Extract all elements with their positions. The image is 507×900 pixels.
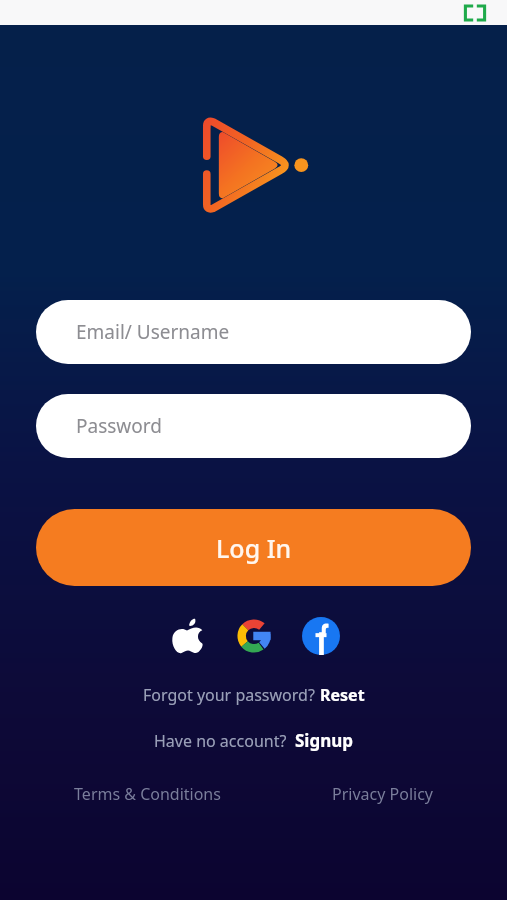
button[interactable]: Have no account? (148, 725, 360, 756)
button[interactable]: Sign in with Facebook (298, 613, 344, 659)
staticText: Reset (320, 684, 365, 706)
staticText: Email/ Username (76, 319, 230, 345)
button[interactable]: Terms & Conditions (70, 779, 225, 809)
staticText: Signup (295, 729, 354, 752)
button[interactable]: Sign in with Google (231, 613, 277, 659)
button[interactable]: Password (36, 394, 471, 458)
staticText: Have no account? (154, 730, 295, 752)
button[interactable]: Forgot your password? (137, 680, 371, 710)
button[interactable]: Log In (36, 509, 471, 586)
button[interactable]: Email/ Username (36, 300, 471, 364)
staticText: Password (76, 413, 162, 439)
button[interactable]: Sign in with Apple (164, 613, 210, 659)
staticText: Forgot your password? (143, 684, 320, 706)
staticText: Log In (216, 531, 292, 565)
button[interactable]: Privacy Policy (328, 779, 437, 809)
